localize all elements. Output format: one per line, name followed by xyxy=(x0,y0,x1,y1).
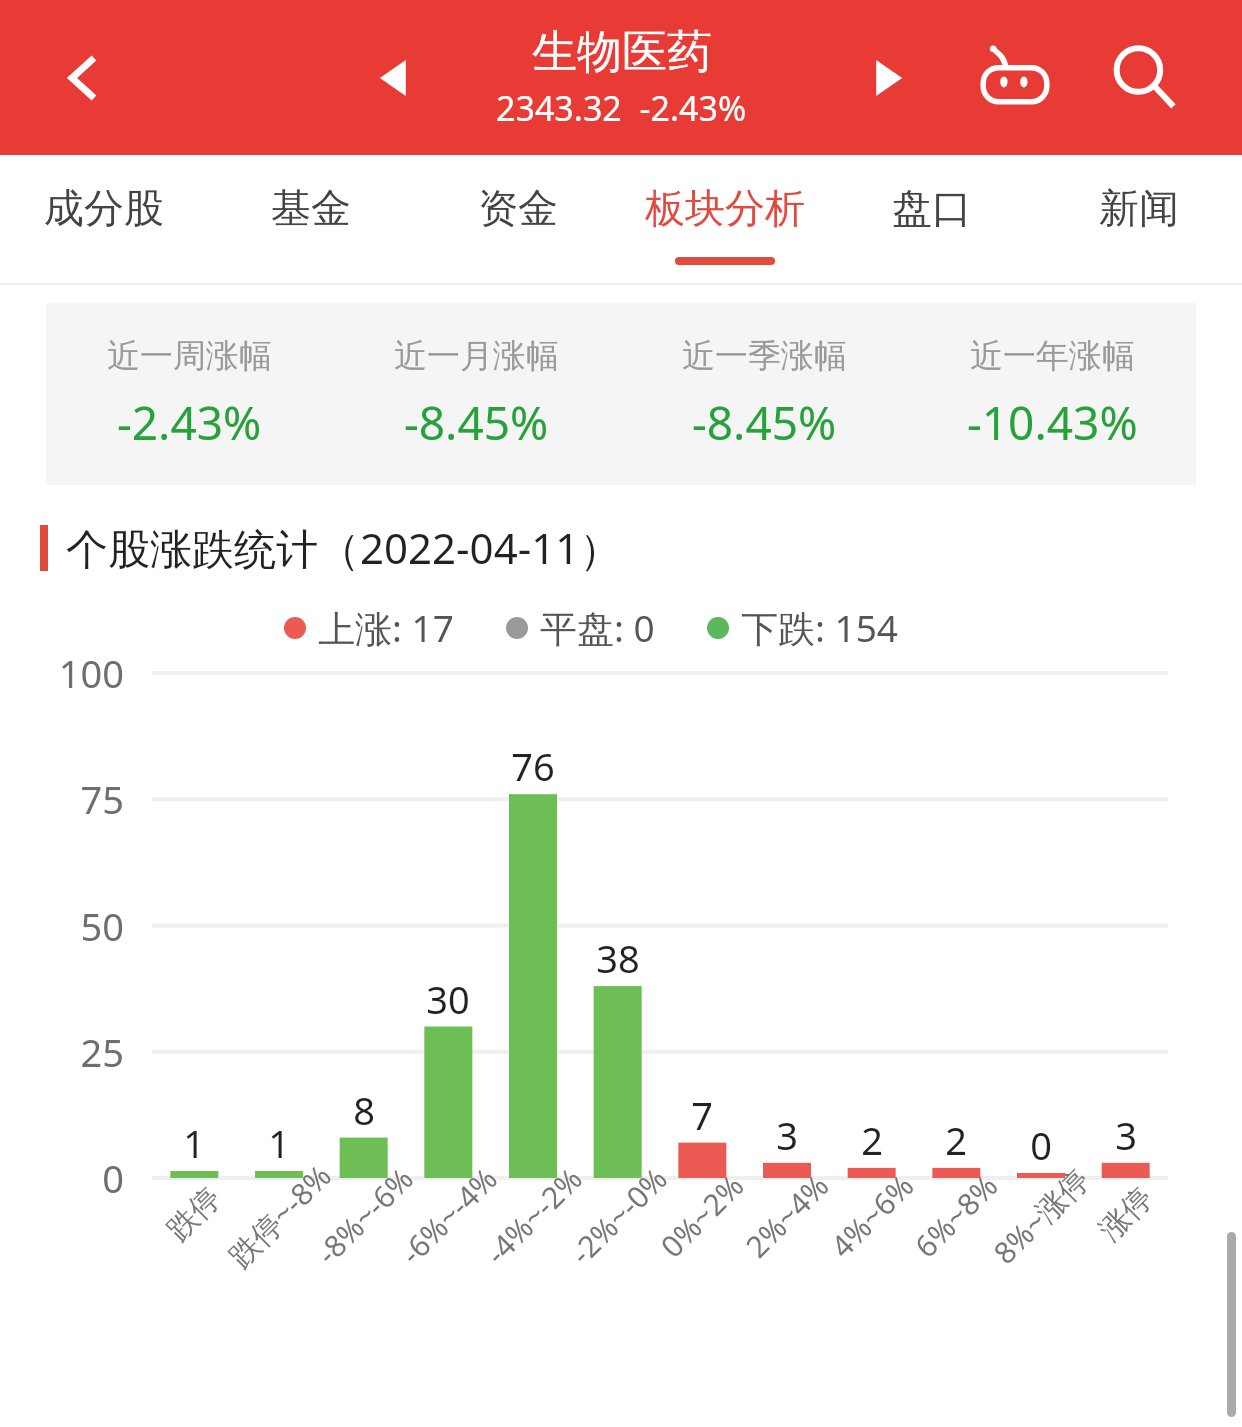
staticText: 2 xyxy=(911,1114,1001,1166)
staticText: 下跌: 154 xyxy=(741,602,899,653)
staticText: 生物医药 xyxy=(532,24,712,81)
button[interactable]: 平盘: 0 xyxy=(506,602,655,653)
staticText: 跌停 xyxy=(159,1179,229,1249)
button[interactable]: AI assistant xyxy=(960,23,1070,133)
button[interactable]: 近一周涨幅 xyxy=(46,335,333,454)
button[interactable]: 板块分析 xyxy=(621,155,828,285)
staticText: 38 xyxy=(573,932,663,984)
staticText: 2%~4% xyxy=(736,1165,837,1266)
staticText: 成分股 xyxy=(44,183,164,233)
staticText: 50 xyxy=(24,900,124,952)
button[interactable]: Search xyxy=(1090,23,1200,133)
staticText: 30 xyxy=(403,973,493,1025)
staticText: 资金 xyxy=(478,183,558,233)
staticText: 上涨: 17 xyxy=(318,602,454,653)
staticText: 76 xyxy=(488,740,578,792)
staticText: 板块分析 xyxy=(645,183,805,233)
button[interactable]: 近一月涨幅 xyxy=(333,335,620,454)
staticText: 6%~8% xyxy=(905,1165,1006,1266)
button[interactable]: 新闻 xyxy=(1035,155,1242,285)
staticText: 3 xyxy=(742,1109,832,1161)
staticText: 3 xyxy=(1081,1109,1171,1161)
button[interactable]: 基金 xyxy=(207,155,414,285)
staticText: -8%~-6% xyxy=(307,1158,422,1273)
staticText: 2 xyxy=(827,1114,917,1166)
button[interactable]: Back xyxy=(36,30,132,126)
staticText: -6%~-4% xyxy=(391,1158,506,1273)
staticText: 0 xyxy=(996,1119,1086,1171)
button[interactable]: 资金 xyxy=(414,155,621,285)
staticText: 7 xyxy=(657,1089,747,1141)
staticText: -4%~-2% xyxy=(476,1158,591,1273)
staticText: -8.45% xyxy=(692,391,837,454)
staticText: 涨停 xyxy=(1091,1179,1161,1249)
button[interactable]: 近一年涨幅 xyxy=(908,335,1196,454)
staticText: -8.45% xyxy=(404,391,549,454)
staticText: 8%~涨停 xyxy=(984,1159,1098,1272)
staticText: 4%~6% xyxy=(821,1165,922,1266)
staticText: 1 xyxy=(234,1117,324,1169)
staticText: -10.43% xyxy=(967,391,1138,454)
staticText: 个股涨跌统计（2022-04-11） xyxy=(66,519,622,576)
staticText: 近一月涨幅 xyxy=(394,335,559,377)
button[interactable]: Previous sector xyxy=(350,33,440,123)
staticText: 0 xyxy=(24,1152,124,1204)
staticText: -2%~-0% xyxy=(561,1158,676,1273)
staticText: 1 xyxy=(149,1117,239,1169)
staticText: 近一季涨幅 xyxy=(682,335,847,377)
staticText: 跌停~-8% xyxy=(219,1155,340,1276)
staticText: 近一周涨幅 xyxy=(107,335,272,377)
staticText: 盘口 xyxy=(892,183,972,233)
staticText: 25 xyxy=(24,1026,124,1078)
button[interactable]: 盘口 xyxy=(828,155,1035,285)
staticText: -2.43% xyxy=(117,391,262,454)
staticText: 2343.32 -2.43% xyxy=(496,85,747,131)
staticText: 近一年涨幅 xyxy=(970,335,1135,377)
button[interactable]: Next sector xyxy=(842,33,932,123)
button[interactable]: 近一季涨幅 xyxy=(620,335,908,454)
staticText: 0%~2% xyxy=(651,1165,752,1266)
staticText: 100 xyxy=(24,647,124,699)
staticText: 8 xyxy=(319,1084,409,1136)
button[interactable]: 成分股 xyxy=(0,155,207,285)
button[interactable]: 下跌: 154 xyxy=(707,602,899,653)
staticText: 新闻 xyxy=(1099,183,1179,233)
staticText: 基金 xyxy=(271,183,351,233)
staticText: 75 xyxy=(24,773,124,825)
staticText: 平盘: 0 xyxy=(540,602,655,653)
button[interactable]: 上涨: 17 xyxy=(284,602,454,653)
